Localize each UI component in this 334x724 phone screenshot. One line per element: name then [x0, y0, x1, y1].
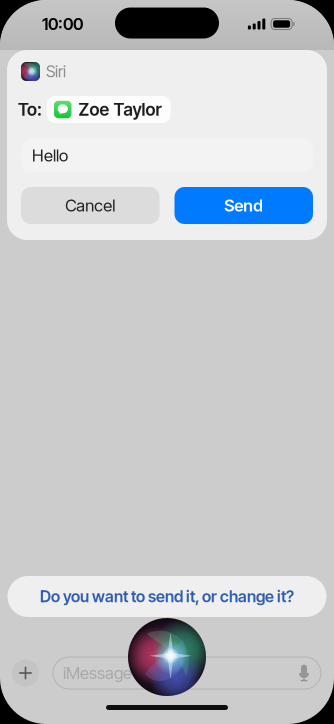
staticText: Cancel — [65, 195, 115, 216]
button[interactable]: Cancel — [21, 187, 159, 224]
button[interactable]: Add attachment — [12, 659, 39, 686]
button[interactable]: Send — [174, 187, 313, 224]
staticText: iMessage — [63, 663, 132, 683]
staticText: Do you want to send it, or change it? — [40, 587, 294, 606]
staticText: Hello — [32, 145, 68, 166]
staticText: 10:00 — [42, 14, 83, 34]
staticText: Siri — [46, 62, 66, 81]
staticText: Send — [224, 195, 263, 216]
staticText: Zoe Taylor — [78, 99, 161, 120]
staticText: To: — [18, 99, 42, 120]
